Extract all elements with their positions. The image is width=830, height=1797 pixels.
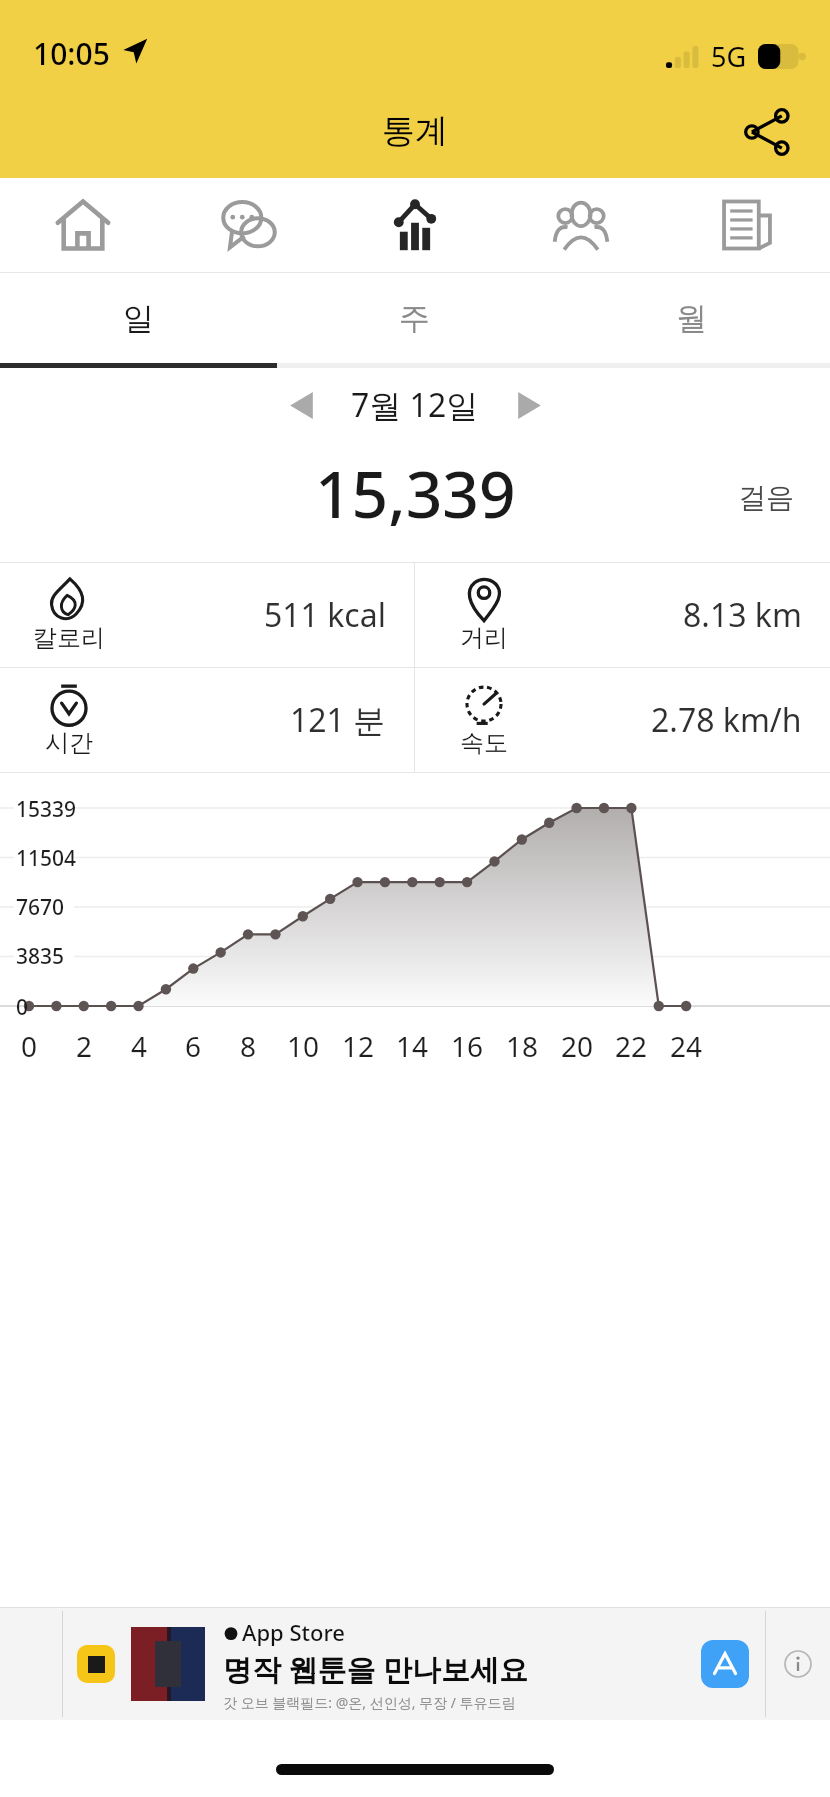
button[interactable]: Next day xyxy=(497,373,561,437)
button[interactable]: App Store xyxy=(0,1608,830,1720)
staticText: 월 xyxy=(676,299,707,338)
staticText: 121 분 xyxy=(290,698,386,742)
staticText: 15339 xyxy=(16,795,77,824)
staticText: 22 xyxy=(615,1027,648,1065)
staticText: 6 xyxy=(185,1027,202,1065)
staticText: 7670 xyxy=(16,893,65,922)
button[interactable]: Ad information xyxy=(766,1608,830,1720)
staticText: 15,339 xyxy=(315,450,516,537)
button[interactable]: Share xyxy=(730,94,806,170)
staticText: 갓 오브 블랙필드: @온, 선인성, 무장 / 투유드림 xyxy=(223,1693,516,1712)
button[interactable]: News xyxy=(664,178,830,272)
staticText: 10:05 xyxy=(33,33,110,74)
staticText: 8.13 km xyxy=(683,593,802,637)
staticText: 주 xyxy=(399,299,430,338)
staticText: 시간 xyxy=(45,728,93,758)
button[interactable]: 일 xyxy=(0,273,276,363)
staticText: 일 xyxy=(123,299,154,338)
staticText: 2 xyxy=(76,1027,93,1065)
button[interactable]: 시간 xyxy=(0,668,414,772)
button[interactable]: Previous day xyxy=(269,373,333,437)
staticText: 16 xyxy=(451,1027,484,1065)
staticText: 명작 웹툰을 만나보세요 xyxy=(223,1649,529,1689)
staticText: 0 xyxy=(16,993,29,1022)
staticText: 통계 xyxy=(382,110,448,152)
staticText: 4 xyxy=(131,1027,148,1065)
staticText: 24 xyxy=(670,1027,703,1065)
staticText: 5G xyxy=(711,38,747,75)
staticText: 14 xyxy=(396,1027,429,1065)
button[interactable]: Statistics xyxy=(332,178,498,272)
staticText: 11504 xyxy=(16,844,77,873)
staticText: 2.78 km/h xyxy=(651,698,802,742)
staticText: 0 xyxy=(21,1027,38,1065)
button[interactable]: 칼로리 xyxy=(0,563,414,667)
staticText: 10 xyxy=(287,1027,320,1065)
button[interactable]: 속도 xyxy=(415,668,830,772)
button[interactable]: 주 xyxy=(276,273,553,363)
staticText: 거리 xyxy=(460,623,508,653)
staticText: 속도 xyxy=(460,728,508,758)
staticText: 8 xyxy=(240,1027,257,1065)
button[interactable]: 월 xyxy=(553,273,830,363)
staticText: 18 xyxy=(506,1027,539,1065)
staticText: 12 xyxy=(342,1027,375,1065)
button[interactable]: Friends xyxy=(498,178,664,272)
button[interactable]: Chat xyxy=(166,178,332,272)
staticText: 칼로리 xyxy=(33,623,105,653)
staticText: App Store xyxy=(242,1617,345,1647)
staticText: 20 xyxy=(561,1027,594,1065)
staticText: 걸음 xyxy=(738,480,794,515)
staticText: 511 kcal xyxy=(264,593,386,637)
staticText: 3835 xyxy=(16,942,65,971)
button[interactable]: Home xyxy=(0,178,166,272)
button[interactable]: 거리 xyxy=(415,563,830,667)
staticText: 7월 12일 xyxy=(351,383,479,427)
